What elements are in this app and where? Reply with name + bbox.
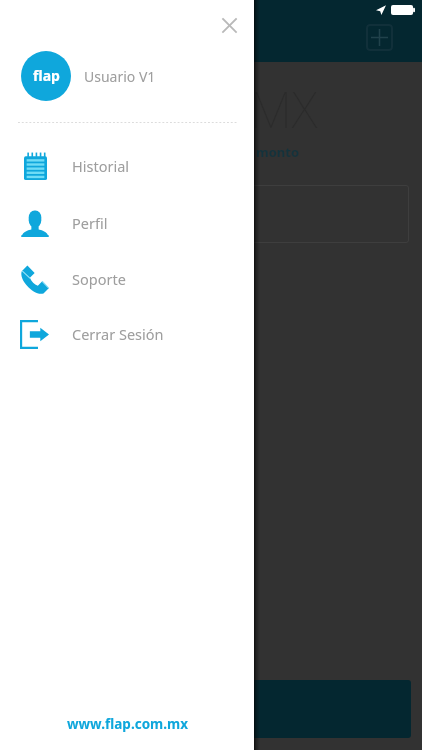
button[interactable]: Soporte [0, 257, 254, 301]
staticText: flap [33, 66, 60, 85]
button[interactable]: Cerrar Sesión [0, 312, 254, 356]
staticText: Usuario V1 [84, 67, 156, 86]
staticText: Historial [72, 156, 130, 176]
button[interactable] [232, 680, 411, 738]
button[interactable]: Close menu [214, 11, 244, 40]
button[interactable]: Perfil [0, 201, 254, 245]
button[interactable]: flap [0, 51, 254, 101]
staticText: $0.00 MX [112, 75, 318, 143]
staticText: Soporte [72, 269, 126, 289]
button[interactable]: www.flap.com.mx [61, 711, 195, 737]
staticText: Cerrar Sesión [72, 324, 164, 344]
staticText: Perfil [72, 213, 108, 233]
staticText: www.flap.com.mx [67, 715, 189, 733]
staticText: monto [256, 143, 300, 161]
button[interactable]: Historial [0, 144, 254, 188]
button[interactable]: Add card [366, 24, 393, 51]
